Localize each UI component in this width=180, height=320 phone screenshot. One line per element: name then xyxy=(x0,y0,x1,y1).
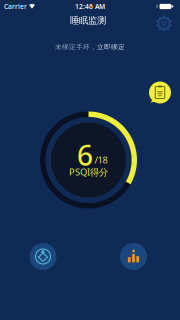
button[interactable]: Settings xyxy=(152,11,176,35)
staticText: Carrier xyxy=(4,2,27,11)
button[interactable]: Sleep xyxy=(21,234,65,278)
staticText: 12:46 AM xyxy=(75,2,105,11)
button[interactable]: 未绑定手环， xyxy=(49,39,131,55)
staticText: 6 xyxy=(77,136,93,174)
staticText: 立即绑定 xyxy=(97,43,125,51)
staticText: 睡眠监测 xyxy=(70,15,106,26)
button[interactable]: Sleep report xyxy=(147,79,173,105)
staticText: 未绑定手环， xyxy=(55,43,97,51)
button[interactable]: Statistics xyxy=(111,234,155,278)
staticText: PSQI得分 xyxy=(69,166,108,178)
staticText: /18 xyxy=(94,154,107,166)
